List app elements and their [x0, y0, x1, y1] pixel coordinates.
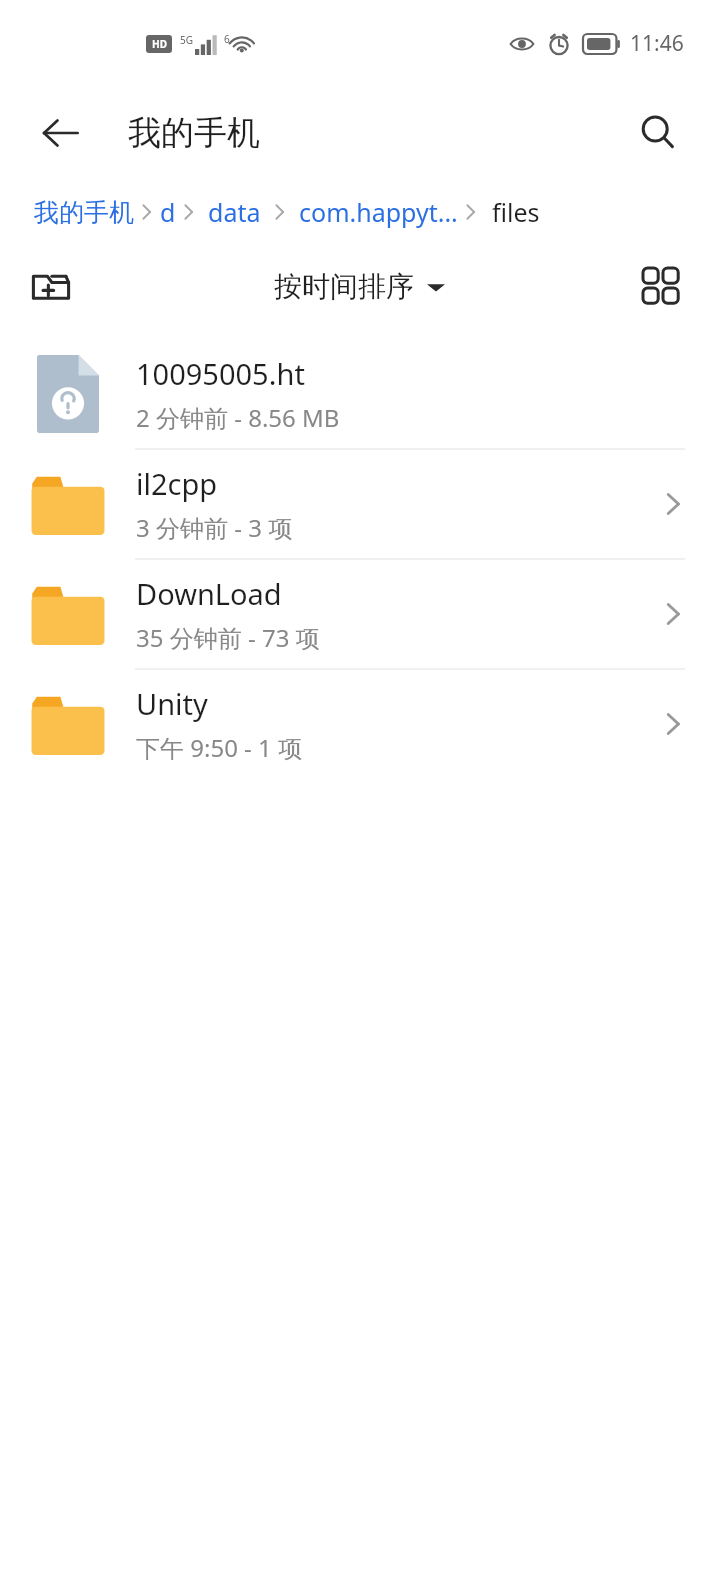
button[interactable]: files [492, 195, 540, 229]
staticText: 我的手机 [34, 197, 134, 228]
button[interactable]: Grid view [630, 255, 692, 317]
staticText: Unity [136, 684, 208, 723]
staticText: 下午 9:50 - 1 项 [136, 731, 303, 764]
staticText: d [160, 195, 176, 229]
staticText: HD [152, 37, 167, 51]
button[interactable]: data [208, 195, 261, 229]
staticText: 35 分钟前 - 73 项 [136, 621, 320, 654]
staticText: com.happyt... [299, 195, 458, 229]
button[interactable]: com.happyt... [299, 195, 458, 229]
button[interactable]: 10095005.ht [0, 340, 720, 448]
staticText: DownLoad [136, 574, 282, 613]
button[interactable]: 按时间排序 [274, 269, 446, 304]
staticText: 我的手机 [128, 112, 260, 154]
staticText: 按时间排序 [274, 269, 414, 304]
staticText: 5G [180, 33, 193, 47]
button[interactable]: DownLoad [0, 560, 720, 668]
staticText: data [208, 195, 261, 229]
button[interactable]: Unity [0, 670, 720, 778]
button[interactable]: Search [626, 101, 690, 165]
button[interactable]: Back [28, 101, 92, 165]
button[interactable]: d [160, 195, 176, 229]
button[interactable]: 我的手机 [34, 197, 134, 228]
staticText: 11:46 [630, 29, 684, 58]
staticText: files [492, 195, 540, 229]
staticText: 2 分钟前 - 8.56 MB [136, 401, 340, 434]
button[interactable]: New folder [20, 255, 82, 317]
staticText: 6 [224, 32, 230, 46]
staticText: 10095005.ht [136, 354, 305, 393]
staticText: il2cpp [136, 464, 218, 503]
staticText: 3 分钟前 - 3 项 [136, 511, 293, 544]
button[interactable]: il2cpp [0, 450, 720, 558]
